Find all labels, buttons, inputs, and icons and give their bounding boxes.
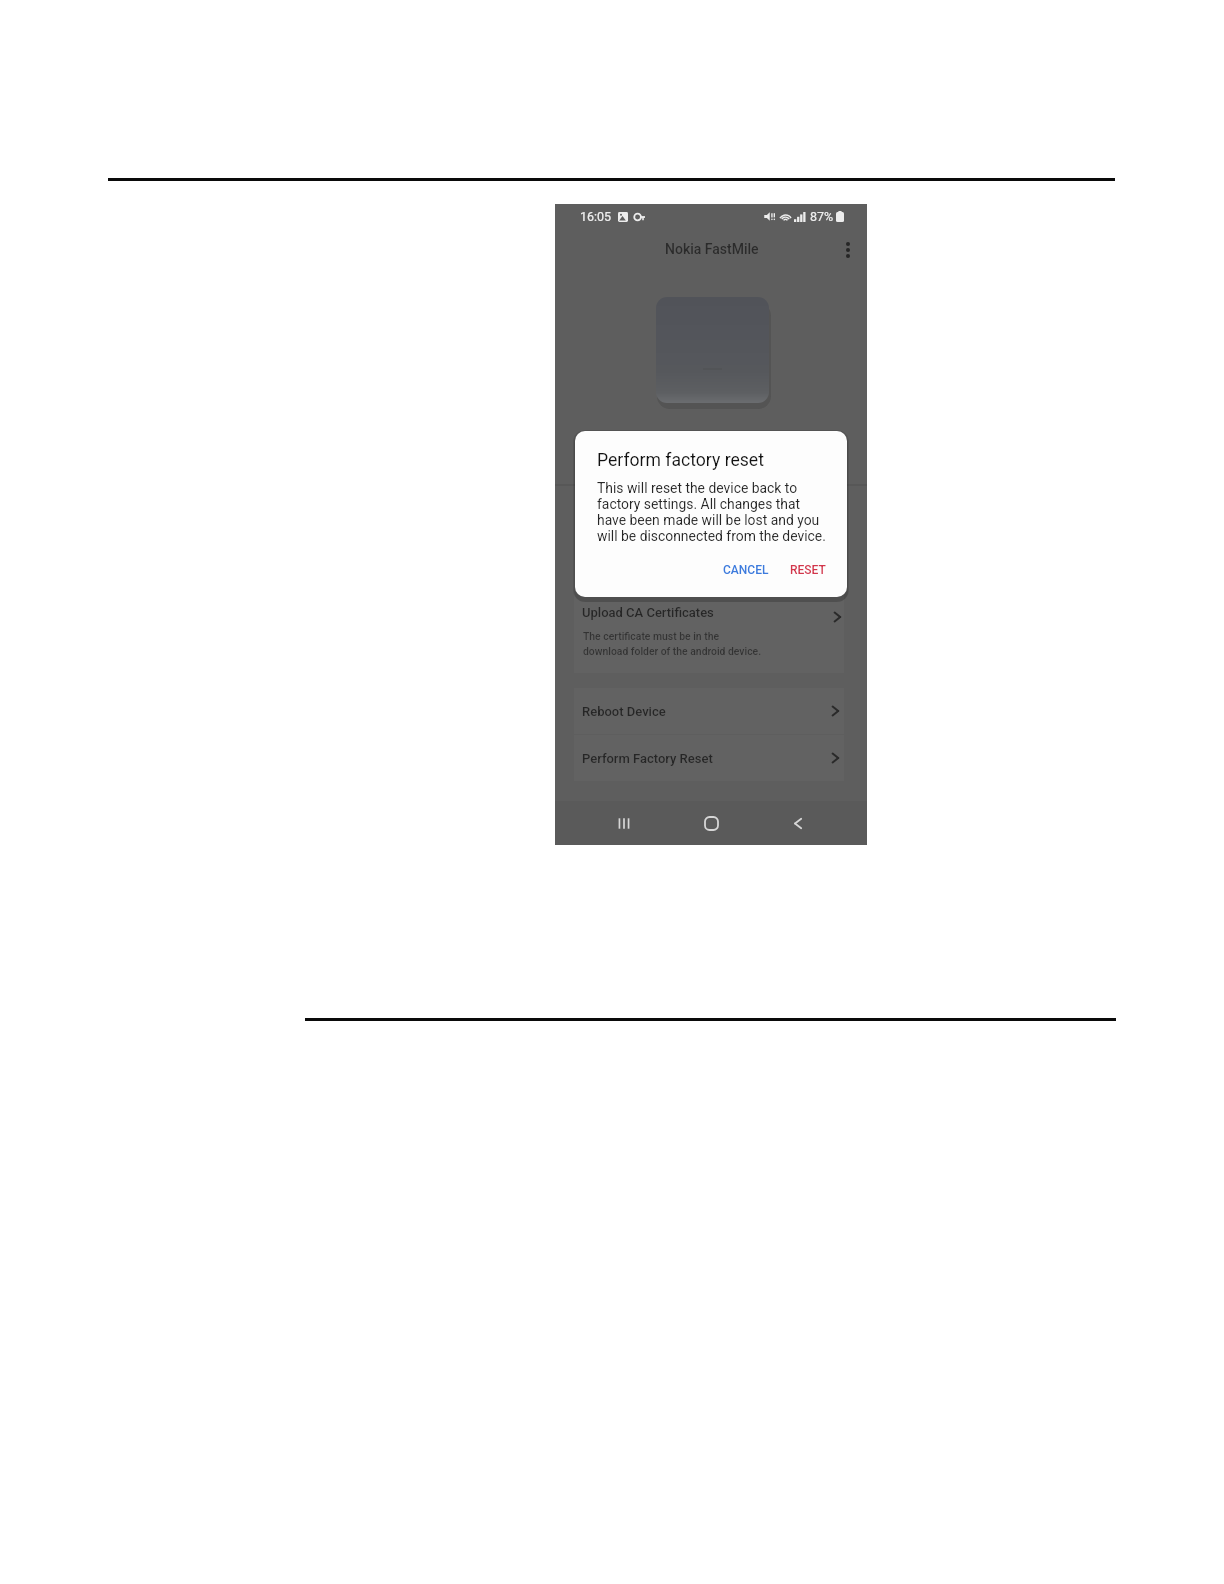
staticText: The certificate must be in the download … [583,630,762,657]
staticText: Nokia FastMile [665,241,759,257]
button[interactable]: Reboot Device [574,688,844,734]
staticText: Reboot Device [582,704,666,719]
staticText: Perform Factory Reset [582,751,713,766]
button[interactable]: Home [693,805,729,841]
button[interactable]: Perform Factory Reset [574,735,844,781]
staticText: will be disconnected from the device. [597,528,826,544]
staticText: Upload CA Certificates [582,605,714,620]
button[interactable]: Recent apps [606,805,642,841]
button[interactable]: CANCEL [714,556,778,584]
button[interactable]: RESET [781,556,835,584]
staticText: 16:05 [580,209,612,224]
staticText: RESET [790,563,826,577]
button[interactable]: More options [833,237,863,267]
button[interactable]: Back [780,805,816,841]
staticText: factory settings. All changes that [597,496,801,512]
staticText: Perform factory reset [597,450,764,471]
staticText: have been made will be lost and you [597,512,820,528]
staticText: CANCEL [723,563,769,577]
staticText: 87% [810,209,834,224]
staticText: This will reset the device back to [597,480,798,496]
button[interactable]: Upload CA Certificates [574,560,844,673]
